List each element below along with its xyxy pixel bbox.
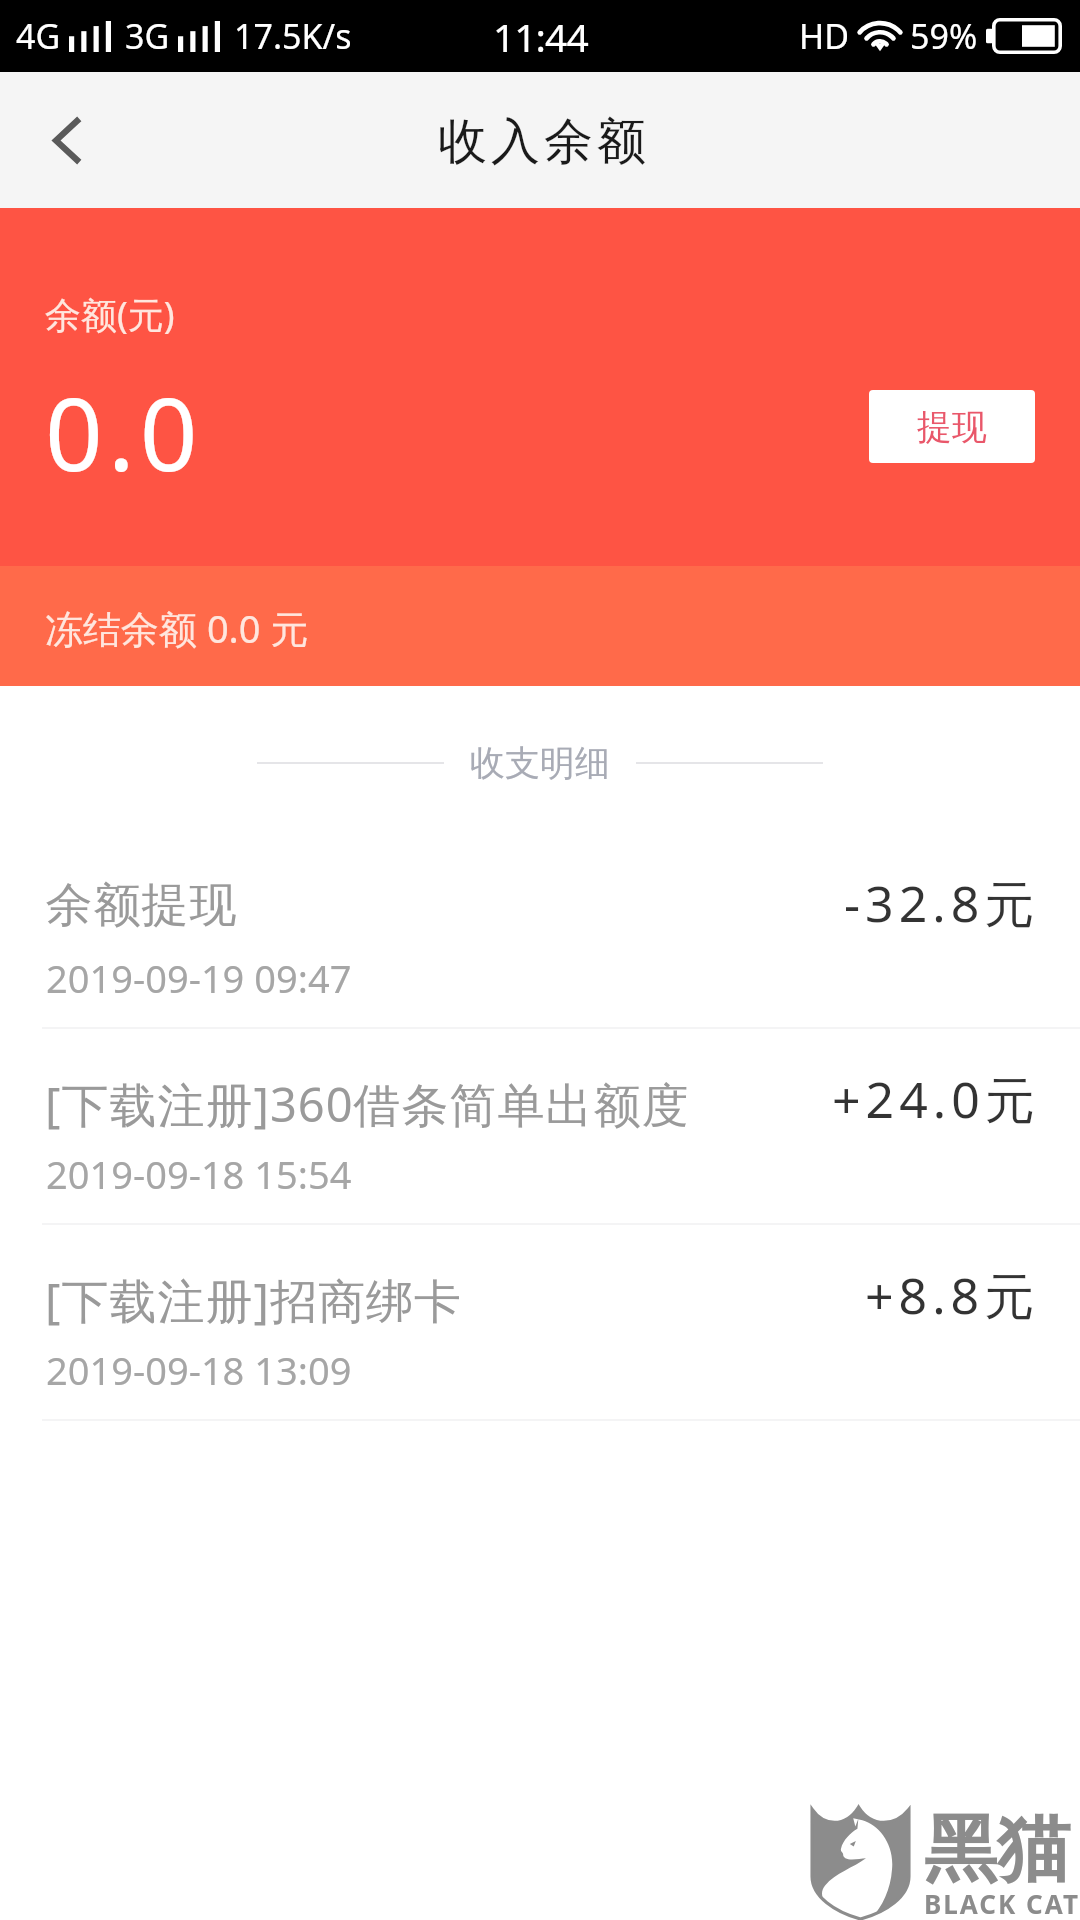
staticText: 余额(元) bbox=[45, 290, 175, 339]
staticText: 11:44 bbox=[493, 10, 588, 63]
staticText: [下载注册]360借条简单出额度 bbox=[45, 1072, 690, 1136]
button[interactable]: Back bbox=[0, 72, 132, 208]
staticText: 黑猫 bbox=[924, 1804, 1070, 1896]
staticText: +24.0元 bbox=[832, 1065, 1040, 1133]
staticText: 0.0 bbox=[45, 363, 203, 501]
staticText: +8.8元 bbox=[865, 1261, 1040, 1329]
staticText: 4G bbox=[16, 13, 61, 59]
staticText: [下载注册]招商绑卡 bbox=[45, 1268, 462, 1332]
button[interactable]: [下载注册]招商绑卡 bbox=[0, 1225, 1080, 1421]
staticText: 2019-09-18 15:54 bbox=[46, 1148, 352, 1200]
button[interactable]: [下载注册]360借条简单出额度 bbox=[0, 1029, 1080, 1225]
staticText: 17.5K/s bbox=[234, 13, 352, 59]
staticText: 2019-09-18 13:09 bbox=[46, 1344, 352, 1396]
staticText: 收支明细 bbox=[470, 741, 610, 785]
staticText: 3G bbox=[125, 13, 170, 59]
staticText: BLACK CAT bbox=[924, 1886, 1080, 1920]
staticText: 余额提现 bbox=[45, 876, 237, 935]
staticText: HD bbox=[799, 13, 850, 59]
button[interactable]: 余额提现 bbox=[0, 833, 1080, 1029]
staticText: 冻结余额 0.0 元 bbox=[45, 602, 309, 654]
staticText: 收入余额 bbox=[436, 111, 648, 173]
staticText: 59% bbox=[910, 13, 978, 59]
staticText: 2019-09-19 09:47 bbox=[46, 952, 352, 1004]
staticText: 提现 bbox=[917, 405, 987, 449]
staticText: -32.8元 bbox=[844, 869, 1040, 937]
button[interactable]: 提现 bbox=[869, 390, 1035, 463]
